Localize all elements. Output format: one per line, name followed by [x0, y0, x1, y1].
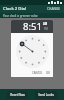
staticText: Your clock is greener color. — [3, 14, 38, 18]
staticText: PM — [44, 27, 48, 31]
staticText: AM — [43, 22, 48, 26]
button[interactable]: OK — [45, 70, 53, 76]
button[interactable]: Clock 2 Dial — [3, 6, 27, 12]
staticText: Reset Now — [10, 93, 25, 97]
button[interactable]: 8:51 — [23, 20, 42, 33]
button[interactable]: Reset Now — [7, 91, 28, 99]
button[interactable]: CHANGE — [47, 7, 61, 11]
button[interactable]: AM — [43, 22, 48, 31]
button[interactable]: CANCEL — [30, 70, 45, 76]
staticText: Send Looks — [38, 93, 54, 97]
button[interactable]: Clock dial, 51 minutes — [16, 35, 49, 68]
button[interactable]: Send Looks — [35, 91, 57, 99]
